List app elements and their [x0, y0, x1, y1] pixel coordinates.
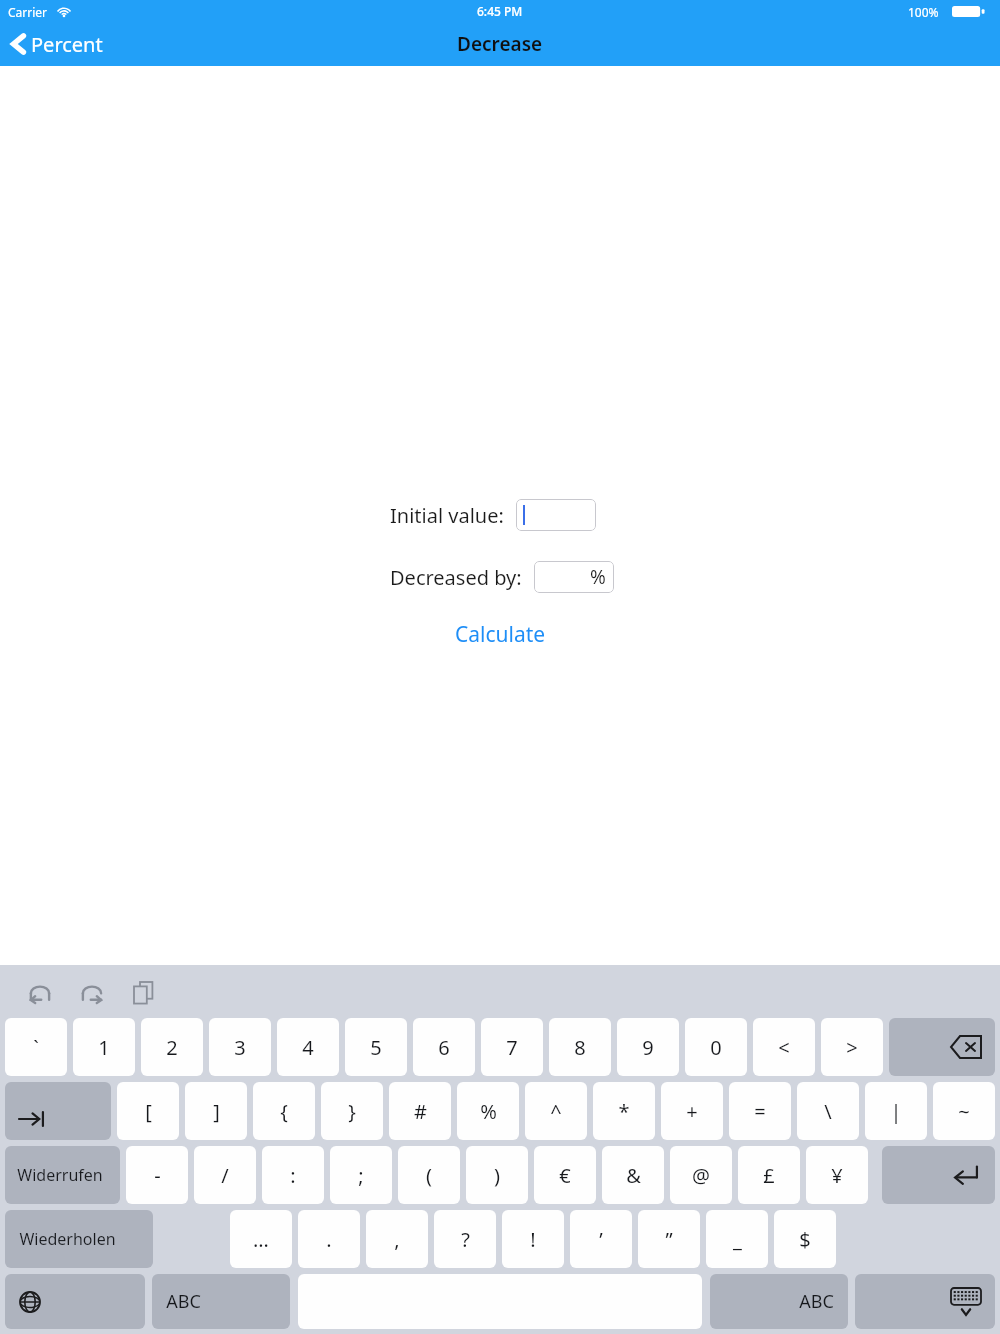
- staticText: -: [154, 1162, 161, 1189]
- button[interactable]: ;: [330, 1146, 392, 1204]
- staticText: 6: [438, 1034, 450, 1061]
- button[interactable]: 4: [277, 1018, 339, 1076]
- button[interactable]: £: [738, 1146, 800, 1204]
- staticText: ABC: [799, 1289, 834, 1314]
- button[interactable]: Widerrufen: [5, 1146, 120, 1204]
- staticText: 1: [98, 1034, 110, 1061]
- button[interactable]: Wiederholen: [5, 1210, 153, 1268]
- staticText: @: [692, 1162, 710, 1189]
- staticText: ”: [665, 1226, 673, 1253]
- button[interactable]: *: [593, 1082, 655, 1140]
- button[interactable]: Redo: [74, 977, 110, 1009]
- button[interactable]: Hide keyboard: [855, 1274, 995, 1329]
- button[interactable]: ,: [366, 1210, 428, 1268]
- staticText: \: [824, 1098, 832, 1125]
- button[interactable]: ¥: [806, 1146, 868, 1204]
- button[interactable]: &: [602, 1146, 664, 1204]
- button[interactable]: Percent: [12, 22, 103, 66]
- button[interactable]: Backspace: [889, 1018, 995, 1076]
- button[interactable]: }: [321, 1082, 383, 1140]
- staticText: 4: [302, 1034, 314, 1061]
- staticText: ~: [958, 1098, 970, 1125]
- button[interactable]: :: [262, 1146, 324, 1204]
- button[interactable]: {: [253, 1082, 315, 1140]
- button[interactable]: |: [865, 1082, 927, 1140]
- staticText: *: [618, 1098, 630, 1125]
- staticText: £: [763, 1162, 775, 1189]
- staticText: .: [326, 1226, 332, 1253]
- staticText: +: [686, 1098, 698, 1125]
- button[interactable]: !: [502, 1210, 564, 1268]
- staticText: 0: [710, 1034, 722, 1061]
- staticText: %: [480, 1098, 497, 1125]
- staticText: ,: [394, 1226, 400, 1253]
- button[interactable]: …: [230, 1210, 292, 1268]
- button[interactable]: €: [534, 1146, 596, 1204]
- button[interactable]: Paste: [126, 977, 162, 1009]
- button[interactable]: ’: [570, 1210, 632, 1268]
- button[interactable]: @: [670, 1146, 732, 1204]
- button[interactable]: ]: [185, 1082, 247, 1140]
- button[interactable]: 5: [345, 1018, 407, 1076]
- button[interactable]: (: [398, 1146, 460, 1204]
- staticText: 2: [166, 1034, 178, 1061]
- staticText: 100%: [908, 4, 939, 20]
- staticText: >: [846, 1034, 858, 1061]
- button[interactable]: 7: [481, 1018, 543, 1076]
- button[interactable]: _: [706, 1210, 768, 1268]
- button[interactable]: 1: [73, 1018, 135, 1076]
- staticText: €: [559, 1162, 571, 1189]
- staticText: Wiederholen: [19, 1228, 116, 1250]
- button[interactable]: Undo: [22, 977, 58, 1009]
- staticText: ;: [358, 1162, 364, 1189]
- button[interactable]: [: [117, 1082, 179, 1140]
- button[interactable]: 0: [685, 1018, 747, 1076]
- button[interactable]: <: [753, 1018, 815, 1076]
- staticText: _: [733, 1226, 742, 1253]
- button[interactable]: +: [661, 1082, 723, 1140]
- button[interactable]: [516, 499, 596, 531]
- button[interactable]: ~: [933, 1082, 995, 1140]
- button[interactable]: 2: [141, 1018, 203, 1076]
- button[interactable]: Next keyboard: [5, 1274, 145, 1329]
- staticText: $: [799, 1226, 811, 1253]
- staticText: Decreased by:: [390, 564, 522, 591]
- button[interactable]: =: [729, 1082, 791, 1140]
- button[interactable]: %: [534, 561, 614, 593]
- staticText: &: [626, 1162, 641, 1189]
- button[interactable]: .: [298, 1210, 360, 1268]
- staticText: ?: [461, 1226, 470, 1253]
- staticText: …: [253, 1226, 269, 1253]
- staticText: ]: [213, 1098, 220, 1125]
- staticText: Calculate: [455, 620, 546, 649]
- button[interactable]: 8: [549, 1018, 611, 1076]
- button[interactable]: 9: [617, 1018, 679, 1076]
- staticText: ’: [599, 1226, 603, 1253]
- button[interactable]: Tab: [5, 1082, 111, 1140]
- staticText: 9: [642, 1034, 654, 1061]
- button[interactable]: ): [466, 1146, 528, 1204]
- button[interactable]: ”: [638, 1210, 700, 1268]
- button[interactable]: $: [774, 1210, 836, 1268]
- button[interactable]: \: [797, 1082, 859, 1140]
- staticText: ABC: [166, 1289, 201, 1314]
- button[interactable]: `: [5, 1018, 67, 1076]
- button[interactable]: 3: [209, 1018, 271, 1076]
- button[interactable]: #: [389, 1082, 451, 1140]
- button[interactable]: /: [194, 1146, 256, 1204]
- button[interactable]: ABC: [710, 1274, 848, 1329]
- button[interactable]: Calculate: [440, 618, 560, 650]
- button[interactable]: ^: [525, 1082, 587, 1140]
- button[interactable]: Return: [882, 1146, 995, 1204]
- staticText: <: [778, 1034, 790, 1061]
- button[interactable]: -: [126, 1146, 188, 1204]
- button[interactable]: %: [457, 1082, 519, 1140]
- staticText: ¥: [831, 1162, 843, 1189]
- button[interactable]: >: [821, 1018, 883, 1076]
- button[interactable]: 6: [413, 1018, 475, 1076]
- button[interactable]: ABC: [152, 1274, 290, 1329]
- staticText: (: [426, 1162, 432, 1189]
- staticText: 7: [506, 1034, 518, 1061]
- button[interactable]: ?: [434, 1210, 496, 1268]
